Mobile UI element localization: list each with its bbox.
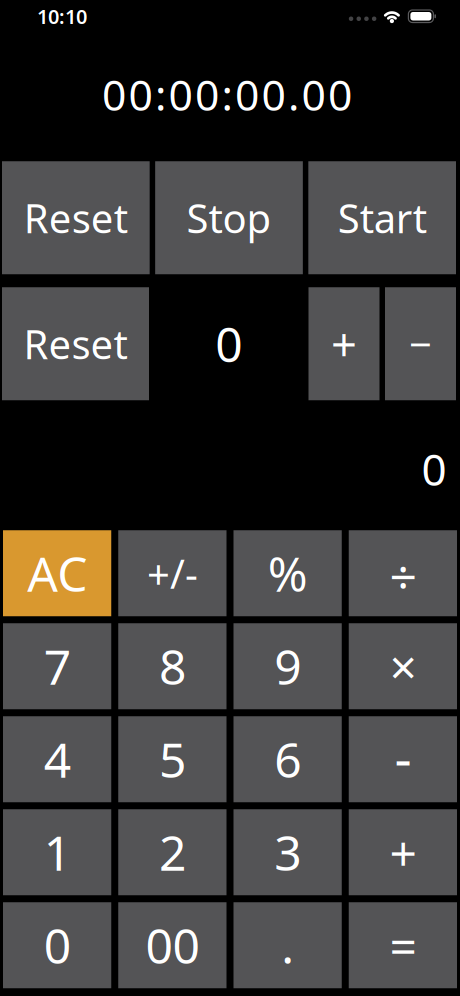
button[interactable]: + bbox=[308, 287, 379, 400]
staticText: 2 bbox=[159, 820, 186, 884]
staticText: - bbox=[394, 721, 411, 792]
staticText: 7 bbox=[44, 634, 71, 698]
staticText: 8 bbox=[159, 634, 186, 698]
button[interactable]: . bbox=[233, 902, 342, 988]
staticText: + bbox=[331, 314, 357, 374]
button[interactable]: ÷ bbox=[349, 530, 457, 616]
button[interactable]: 9 bbox=[233, 623, 342, 709]
staticText: 00:00:00.00 bbox=[102, 66, 352, 123]
button[interactable]: = bbox=[349, 902, 457, 988]
button[interactable]: 7 bbox=[3, 623, 111, 709]
staticText: AC bbox=[27, 541, 87, 605]
button[interactable]: 8 bbox=[118, 623, 226, 709]
staticText: 10:10 bbox=[37, 3, 87, 30]
staticText: − bbox=[409, 317, 432, 370]
button[interactable]: + bbox=[349, 809, 457, 895]
button[interactable]: 6 bbox=[233, 716, 342, 802]
button[interactable]: 3 bbox=[233, 809, 342, 895]
staticText: 0 bbox=[215, 312, 242, 376]
button[interactable]: - bbox=[349, 716, 457, 802]
staticText: × bbox=[389, 634, 416, 698]
staticText: 4 bbox=[44, 727, 71, 791]
staticText: Start bbox=[338, 191, 427, 244]
staticText: % bbox=[268, 541, 308, 605]
button[interactable]: 0 bbox=[3, 902, 111, 988]
staticText: Stop bbox=[186, 191, 271, 244]
staticText: 9 bbox=[274, 634, 301, 698]
staticText: Reset bbox=[23, 317, 127, 370]
staticText: +/- bbox=[147, 547, 198, 600]
button[interactable]: +/- bbox=[118, 530, 226, 616]
staticText: Reset bbox=[24, 191, 128, 244]
button[interactable]: 00 bbox=[118, 902, 226, 988]
staticText: . bbox=[281, 913, 294, 977]
button[interactable]: 4 bbox=[3, 716, 111, 802]
button[interactable]: Reset bbox=[2, 161, 150, 274]
button[interactable]: 1 bbox=[3, 809, 111, 895]
staticText: 3 bbox=[274, 820, 301, 884]
button[interactable]: Reset bbox=[2, 287, 149, 400]
button[interactable]: 5 bbox=[118, 716, 226, 802]
button[interactable]: 2 bbox=[118, 809, 226, 895]
staticText: 0 bbox=[421, 439, 446, 498]
staticText: = bbox=[389, 913, 416, 977]
staticText: 5 bbox=[159, 727, 186, 791]
button[interactable]: Stop bbox=[155, 161, 303, 274]
button[interactable]: % bbox=[233, 530, 342, 616]
button[interactable]: AC bbox=[3, 530, 111, 616]
staticText: 6 bbox=[274, 727, 301, 791]
staticText: 00 bbox=[145, 913, 199, 977]
button[interactable]: Start bbox=[308, 161, 456, 274]
staticText: + bbox=[389, 820, 416, 884]
staticText: ÷ bbox=[389, 544, 416, 608]
button[interactable]: × bbox=[349, 623, 457, 709]
staticText: 1 bbox=[44, 820, 71, 884]
button[interactable]: − bbox=[385, 287, 456, 400]
staticText: 0 bbox=[44, 913, 71, 977]
